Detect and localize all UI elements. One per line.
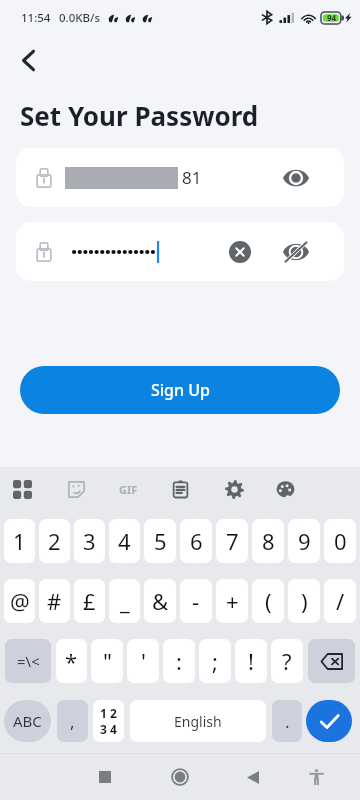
staticText: / — [336, 586, 345, 616]
staticText: - — [192, 586, 200, 616]
staticText: 4 — [118, 526, 131, 556]
staticText: + — [226, 586, 239, 616]
staticText: : — [176, 646, 182, 676]
staticText: 6 — [190, 526, 203, 556]
staticText: 5 — [154, 526, 167, 556]
button[interactable]: " — [91, 639, 123, 683]
button[interactable]: - — [180, 579, 212, 623]
button[interactable]: Back — [235, 759, 271, 795]
button[interactable]: Accessibility — [298, 759, 334, 795]
staticText: 3 — [83, 526, 96, 556]
button[interactable]: 4 — [109, 519, 140, 563]
button[interactable]: 9 — [288, 519, 320, 563]
button[interactable]: Clipboard — [164, 473, 196, 505]
button[interactable]: ! — [235, 639, 267, 683]
button[interactable]: : — [163, 639, 195, 683]
staticText: ( — [265, 586, 272, 616]
staticText: 1 2 — [100, 705, 117, 721]
staticText: ? — [282, 646, 292, 676]
button[interactable]: Apps — [6, 473, 38, 505]
button[interactable]: ; — [199, 639, 231, 683]
button[interactable]: @ — [4, 579, 35, 623]
staticText: 1 — [13, 526, 26, 556]
staticText: 7 — [226, 526, 239, 556]
button[interactable]: 6 — [180, 519, 212, 563]
staticText: * — [65, 646, 78, 676]
button[interactable]: + — [216, 579, 248, 623]
staticText: 8 — [262, 526, 275, 556]
button[interactable]: ? — [271, 639, 303, 683]
button[interactable]: & — [144, 579, 176, 623]
button[interactable]: Sign Up — [20, 366, 340, 414]
staticText: 2 — [48, 526, 61, 556]
button[interactable]: Theme — [269, 473, 301, 505]
staticText: ; — [212, 646, 218, 676]
button[interactable]: / — [324, 579, 356, 623]
staticText: _ — [120, 586, 130, 616]
staticText: GIF — [119, 482, 138, 497]
staticText: ' — [141, 646, 146, 676]
button[interactable]: 3 — [74, 519, 105, 563]
button[interactable]: Clear text — [16, 222, 344, 281]
button[interactable]: Settings — [218, 473, 250, 505]
staticText: 94 — [327, 12, 337, 23]
staticText: Sign Up — [151, 379, 210, 401]
button[interactable]: Show password — [278, 160, 314, 196]
staticText: =\< — [17, 651, 40, 671]
button[interactable]: Clear text — [223, 235, 257, 269]
staticText: " — [103, 646, 112, 676]
button[interactable]: 7 — [216, 519, 248, 563]
button[interactable]: . — [272, 700, 302, 742]
button[interactable]: GIF — [112, 473, 144, 505]
button[interactable]: Stickers — [60, 473, 92, 505]
button[interactable]: 1 — [4, 519, 35, 563]
staticText: , — [70, 710, 75, 733]
button[interactable]: Hide password — [278, 234, 314, 270]
button[interactable]: , — [57, 700, 88, 742]
staticText: ! — [248, 646, 254, 676]
button[interactable]: Enter — [306, 700, 352, 742]
staticText: 0.0KB/s — [59, 10, 101, 26]
staticText: & — [152, 586, 169, 616]
button[interactable]: 1 2 — [93, 700, 124, 742]
button[interactable]: 5 — [144, 519, 176, 563]
button[interactable]: £ — [74, 579, 105, 623]
button[interactable]: * — [56, 639, 87, 683]
button[interactable]: Backspace — [308, 639, 355, 683]
button[interactable]: # — [39, 579, 70, 623]
staticText: 11:54 — [21, 10, 51, 26]
staticText: . — [285, 710, 290, 733]
staticText: ) — [301, 586, 308, 616]
button[interactable]: 81 — [16, 148, 344, 207]
button[interactable]: 2 — [39, 519, 70, 563]
button[interactable]: ) — [288, 579, 320, 623]
button[interactable]: =\< — [5, 639, 51, 683]
staticText: English — [174, 712, 222, 731]
staticText: £ — [83, 586, 96, 616]
staticText: 81 — [182, 166, 202, 189]
button[interactable]: ABC — [4, 700, 51, 742]
button[interactable]: ( — [252, 579, 284, 623]
staticText: 0 — [334, 526, 347, 556]
staticText: 3 4 — [100, 721, 117, 737]
button[interactable]: Recents — [87, 759, 123, 795]
button[interactable]: Back — [8, 40, 48, 80]
staticText: ABC — [13, 711, 42, 731]
button[interactable]: English — [130, 700, 266, 742]
staticText: Set Your Password — [20, 98, 259, 133]
staticText: 9 — [298, 526, 311, 556]
staticText: @ — [10, 586, 30, 616]
button[interactable]: 8 — [252, 519, 284, 563]
staticText: # — [47, 586, 62, 616]
button[interactable]: Home — [162, 759, 198, 795]
button[interactable]: 0 — [324, 519, 356, 563]
button[interactable]: ' — [127, 639, 159, 683]
button[interactable]: _ — [109, 579, 140, 623]
